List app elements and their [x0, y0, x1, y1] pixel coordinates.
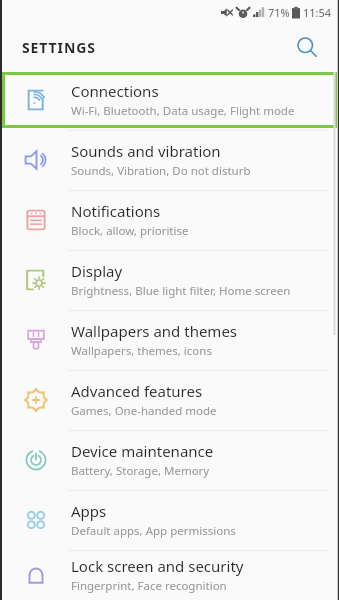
- staticText: Apps: [71, 501, 107, 521]
- staticText: Sounds, Vibration, Do not disturb: [71, 163, 251, 179]
- button[interactable]: Connections: [2, 72, 337, 128]
- button[interactable]: Search: [291, 31, 323, 63]
- staticText: Connections: [71, 81, 159, 101]
- button[interactable]: Notifications: [0, 190, 339, 250]
- button[interactable]: Advanced features: [0, 370, 339, 430]
- staticText: 11:54: [303, 5, 332, 20]
- button[interactable]: Sounds and vibration: [0, 130, 339, 190]
- button[interactable]: Wallpapers and themes: [0, 310, 339, 370]
- staticText: Block, allow, prioritise: [71, 223, 189, 239]
- staticText: SETTINGS: [22, 38, 96, 57]
- staticText: Lock screen and security: [71, 556, 244, 576]
- button[interactable]: Device maintenance: [0, 430, 339, 490]
- staticText: Battery, Storage, Memory: [71, 463, 210, 479]
- staticText: Advanced features: [71, 381, 203, 401]
- button[interactable]: Display: [0, 250, 339, 310]
- staticText: Sounds and vibration: [71, 141, 221, 161]
- button[interactable]: Lock screen and security: [0, 550, 339, 600]
- staticText: Default apps, App permissions: [71, 523, 236, 539]
- staticText: Display: [71, 261, 123, 281]
- staticText: Fingerprint, Face recognition: [71, 578, 227, 594]
- staticText: Notifications: [71, 201, 161, 221]
- button[interactable]: Apps: [0, 490, 339, 550]
- staticText: Wi-Fi, Bluetooth, Data usage, Flight mod…: [71, 103, 295, 119]
- staticText: Wallpapers, themes, icons: [71, 343, 212, 359]
- staticText: Brightness, Blue light filter, Home scre…: [71, 283, 291, 299]
- staticText: Wallpapers and themes: [71, 321, 238, 341]
- staticText: Games, One-handed mode: [71, 403, 217, 419]
- staticText: 71%: [268, 5, 290, 20]
- staticText: Device maintenance: [71, 441, 214, 461]
